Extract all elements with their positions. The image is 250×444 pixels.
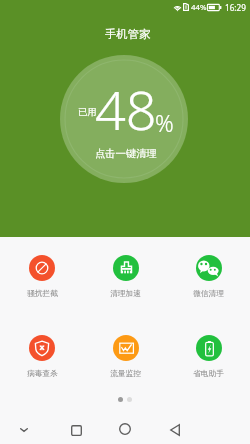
staticText: 骚扰拦截 [27, 289, 58, 299]
button[interactable]: Hide keyboard [12, 418, 36, 442]
staticText: 微信清理 [193, 289, 224, 299]
button[interactable]: Back [163, 418, 187, 442]
staticText: 清理加速 [110, 289, 141, 299]
button[interactable]: Home [113, 417, 137, 441]
staticText: 44% [191, 2, 207, 13]
staticText: % [155, 107, 174, 138]
staticText: 48 [95, 72, 157, 146]
staticText: 点击一键清理 [95, 147, 157, 160]
button[interactable]: 骚扰拦截 [0, 255, 84, 299]
button[interactable]: 微信清理 [167, 255, 250, 299]
staticText: 省电助手 [193, 369, 224, 379]
staticText: 流量监控 [110, 369, 141, 379]
button[interactable]: 清理加速 [84, 255, 167, 299]
button[interactable]: Recents [64, 418, 88, 442]
staticText: 已用 [78, 106, 97, 118]
staticText: 16:29 [225, 2, 246, 13]
button[interactable]: 病毒查杀 [0, 335, 84, 379]
button[interactable]: 省电助手 [167, 335, 250, 379]
staticText: 病毒查杀 [27, 369, 58, 379]
staticText: 手机管家 [105, 27, 151, 41]
button[interactable]: 已用 [60, 55, 188, 183]
button[interactable]: 流量监控 [84, 335, 167, 379]
